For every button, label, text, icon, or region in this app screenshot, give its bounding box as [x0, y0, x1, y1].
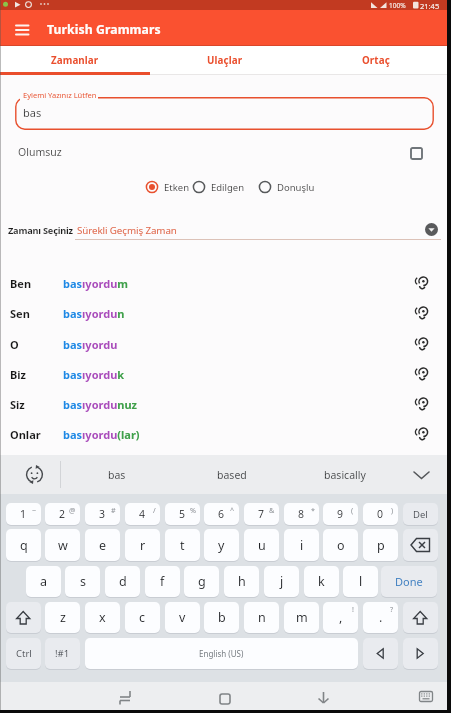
button[interactable]: n: [244, 602, 279, 633]
button[interactable]: 5: [165, 503, 200, 525]
staticText: r: [140, 537, 146, 554]
button[interactable]: [207, 682, 243, 710]
button[interactable]: [6, 13, 38, 43]
button[interactable]: [403, 460, 439, 489]
button[interactable]: 6: [204, 503, 239, 525]
staticText: *: [311, 505, 315, 515]
staticText: n: [258, 609, 266, 626]
staticText: s: [80, 573, 86, 590]
button[interactable]: Olumsuz: [10, 140, 435, 165]
button[interactable]: m: [284, 602, 319, 633]
button[interactable]: Biz: [0, 359, 445, 389]
button[interactable]: Zamanı Seçiniz: [0, 216, 451, 243]
button[interactable]: [6, 602, 41, 633]
button[interactable]: [306, 682, 342, 710]
staticText: based: [217, 468, 247, 482]
staticText: basıyorduk: [63, 367, 125, 382]
button[interactable]: j: [264, 566, 299, 597]
button[interactable]: Ben: [0, 268, 445, 298]
button[interactable]: s: [65, 566, 100, 597]
button[interactable]: [363, 638, 398, 669]
button[interactable]: bas: [62, 463, 172, 487]
button[interactable]: i: [284, 529, 319, 561]
staticText: Eylemi Yazınız Lütfen: [23, 90, 97, 100]
button[interactable]: y: [204, 529, 239, 561]
button[interactable]: Ortaç: [300, 46, 451, 75]
button[interactable]: 9: [323, 503, 358, 525]
button[interactable]: w: [45, 529, 80, 561]
button[interactable]: 1: [6, 503, 41, 525]
button[interactable]: based: [177, 463, 287, 487]
button[interactable]: [108, 682, 144, 710]
staticText: q: [20, 537, 28, 554]
button[interactable]: Ulaçlar: [150, 46, 300, 75]
staticText: 2: [59, 507, 66, 521]
button[interactable]: Siz: [0, 389, 445, 419]
button[interactable]: 7: [244, 503, 279, 525]
button[interactable]: h: [224, 566, 259, 597]
button[interactable]: ,: [323, 602, 358, 633]
button[interactable]: z: [45, 602, 80, 633]
button[interactable]: 3: [85, 503, 120, 525]
staticText: basıyordun: [63, 306, 125, 321]
button[interactable]: p: [363, 529, 398, 561]
staticText: ): [391, 505, 394, 515]
staticText: ~: [32, 505, 37, 515]
staticText: !#1: [55, 647, 70, 660]
button[interactable]: Onlar: [0, 419, 445, 449]
button[interactable]: Sen: [0, 298, 445, 328]
staticText: %: [190, 505, 196, 515]
button[interactable]: O: [0, 329, 445, 359]
button[interactable]: b: [204, 602, 239, 633]
button[interactable]: [403, 638, 438, 669]
button[interactable]: Zamanlar: [0, 46, 150, 75]
button[interactable]: k: [304, 566, 339, 597]
staticText: Olumsuz: [18, 145, 62, 159]
staticText: !: [352, 604, 354, 614]
staticText: Zamanlar: [51, 54, 99, 67]
button[interactable]: [15, 97, 434, 130]
button[interactable]: [403, 602, 438, 633]
staticText: ?: [390, 604, 394, 614]
button[interactable]: 8: [284, 503, 319, 525]
button[interactable]: d: [105, 566, 140, 597]
button[interactable]: basically: [290, 463, 400, 487]
button[interactable]: Etken: [145, 180, 171, 194]
button[interactable]: g: [184, 566, 219, 597]
button[interactable]: .: [363, 602, 398, 633]
button[interactable]: [403, 529, 438, 561]
button[interactable]: l: [343, 566, 378, 597]
staticText: basıyordum: [63, 276, 129, 291]
button[interactable]: [13, 459, 53, 490]
button[interactable]: Edilgen: [192, 180, 226, 194]
button[interactable]: a: [26, 566, 61, 597]
button[interactable]: o: [323, 529, 358, 561]
button[interactable]: [412, 682, 444, 710]
button[interactable]: !#1: [45, 638, 80, 669]
button[interactable]: v: [165, 602, 200, 633]
button[interactable]: English (US): [85, 638, 358, 669]
button[interactable]: r: [125, 529, 160, 561]
staticText: 7: [258, 507, 265, 521]
staticText: x: [99, 609, 106, 626]
button[interactable]: 4: [125, 503, 160, 525]
button[interactable]: q: [6, 529, 41, 561]
staticText: Zamanı Seçiniz: [8, 224, 73, 237]
button[interactable]: Done: [381, 566, 437, 597]
staticText: Done: [395, 574, 423, 589]
button[interactable]: x: [85, 602, 120, 633]
button[interactable]: Ctrl: [6, 638, 41, 669]
button[interactable]: t: [165, 529, 200, 561]
button[interactable]: f: [145, 566, 180, 597]
button[interactable]: Del: [403, 503, 438, 525]
button[interactable]: Donuşlu: [258, 180, 296, 194]
staticText: t: [180, 537, 185, 554]
button[interactable]: 2: [45, 503, 80, 525]
button[interactable]: u: [244, 529, 279, 561]
staticText: #: [111, 505, 116, 515]
staticText: v: [179, 609, 186, 626]
button[interactable]: 0: [363, 503, 398, 525]
button[interactable]: c: [125, 602, 160, 633]
staticText: Ortaç: [362, 54, 390, 67]
button[interactable]: e: [85, 529, 120, 561]
